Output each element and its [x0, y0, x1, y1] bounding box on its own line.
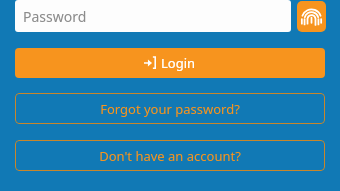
button[interactable]: Login [15, 48, 325, 78]
staticText: Login [161, 54, 196, 72]
button[interactable]: Password [15, 0, 291, 32]
button[interactable]: Forgot your password? [15, 93, 325, 124]
staticText: Password [23, 7, 87, 26]
button[interactable]: Fingerprint login [297, 1, 326, 32]
staticText: Don't have an account? [99, 147, 241, 165]
button[interactable]: Don't have an account? [15, 140, 325, 171]
staticText: Forgot your password? [100, 100, 240, 118]
